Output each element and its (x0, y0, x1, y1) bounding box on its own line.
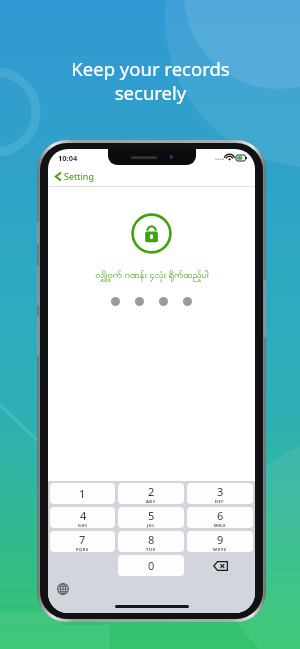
staticText: GHI (78, 523, 88, 528)
staticText: 8 (148, 532, 155, 547)
staticText: Setting (64, 170, 94, 182)
staticText: 0 (148, 558, 155, 573)
button[interactable]: 3 (187, 483, 253, 504)
staticText: 9 (217, 532, 224, 547)
staticText: TUV (146, 547, 156, 552)
staticText: 6 (217, 508, 224, 523)
staticText: ABC (146, 499, 156, 504)
staticText: WXYZ (213, 547, 227, 552)
staticText: 10:04 (58, 153, 78, 163)
button[interactable]: 1 (50, 483, 115, 504)
button[interactable]: 5 (118, 507, 184, 528)
staticText: DEF (215, 499, 225, 504)
button[interactable]: 0 (118, 555, 184, 576)
staticText: 1 (79, 486, 86, 501)
staticText: 5 (148, 508, 155, 523)
staticText: 4 (80, 508, 87, 523)
staticText: 3 (217, 484, 224, 499)
button[interactable]: 2 (118, 483, 184, 504)
button[interactable]: 6 (187, 507, 253, 528)
staticText: လျှို့ဝှက် ဂဏန်း ၄လုံး ရိုက်ထည့်ပါ (95, 268, 209, 283)
button[interactable]: 4 (50, 507, 115, 528)
button[interactable]: 9 (187, 531, 253, 552)
staticText: 7 (79, 532, 86, 547)
staticText: PQRS (76, 547, 89, 552)
button[interactable]: 8 (118, 531, 184, 552)
staticText: Keep your records securely (71, 56, 230, 105)
button[interactable]: Delete (187, 555, 253, 576)
staticText: MNO (214, 523, 226, 528)
button[interactable]: Change keyboard (57, 583, 69, 595)
button[interactable]: 7 (50, 531, 115, 552)
button[interactable]: Setting (48, 166, 255, 186)
staticText: 2 (148, 484, 155, 499)
staticText: JKL (147, 523, 156, 528)
